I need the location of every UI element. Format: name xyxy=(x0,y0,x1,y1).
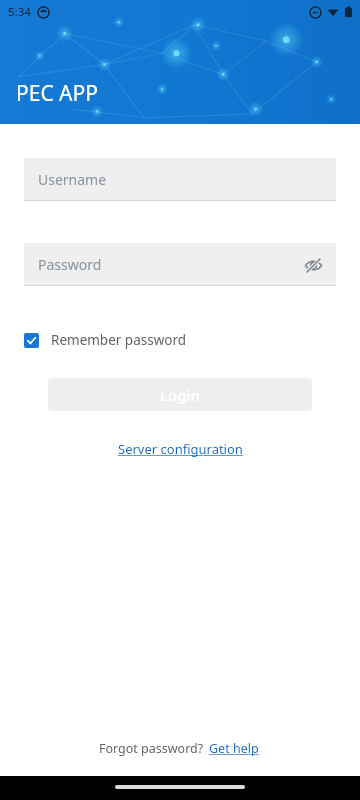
staticText: Server configuration xyxy=(118,440,243,458)
button[interactable]: Show password xyxy=(300,252,326,278)
staticText: Forgot password? xyxy=(99,740,207,757)
staticText: 5:34 xyxy=(8,4,31,20)
button[interactable]: Password xyxy=(24,243,336,286)
staticText: Remember password xyxy=(51,331,187,349)
staticText: Get help xyxy=(209,740,259,757)
button[interactable]: Server configuration xyxy=(110,437,251,461)
button[interactable]: Remember password xyxy=(24,329,199,351)
staticText: Login xyxy=(160,385,200,405)
staticText: Password xyxy=(38,255,102,274)
staticText: Username xyxy=(38,170,107,189)
button[interactable]: Username xyxy=(24,158,336,201)
button[interactable]: Get help xyxy=(207,737,261,760)
staticText: PEC APP xyxy=(16,79,98,108)
